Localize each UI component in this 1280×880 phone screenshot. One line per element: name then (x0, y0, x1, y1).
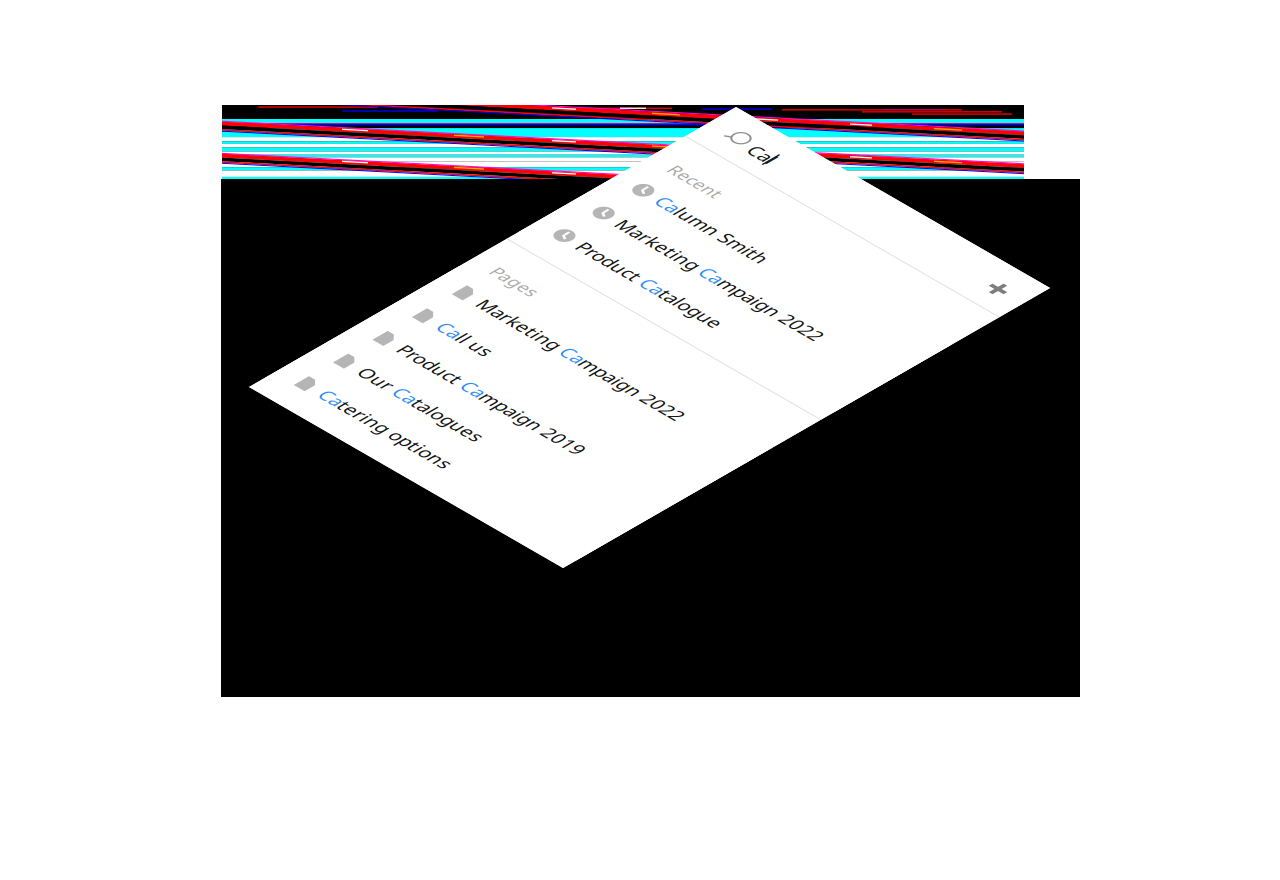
button[interactable]: Marketing (0, 160, 362, 205)
button[interactable]: Product (0, 412, 362, 457)
button[interactable]: Ca (0, 114, 362, 160)
button[interactable]: Marketing (0, 320, 362, 366)
button[interactable]: Ca (0, 366, 362, 412)
staticText: mpaign 2022 (165, 331, 280, 355)
button[interactable]: Product (0, 205, 362, 251)
staticText: mpaign 2022 (165, 170, 280, 195)
button[interactable]: Ca (0, 503, 362, 548)
staticText: mpaign 2019 (142, 422, 257, 447)
button[interactable]: Our (0, 457, 362, 503)
